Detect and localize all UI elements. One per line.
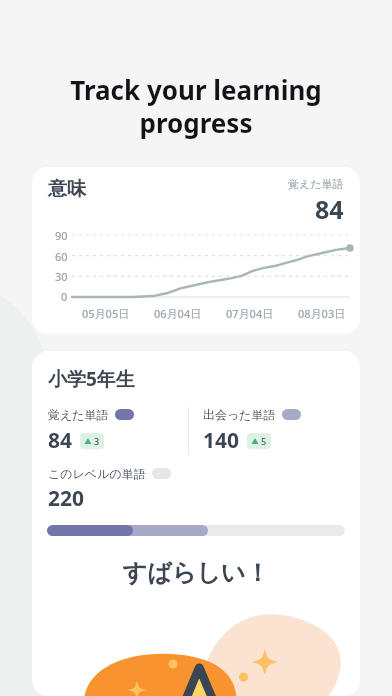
staticText: このレベルの単語 [48, 466, 146, 481]
staticText: すばらしい！ [32, 558, 360, 588]
staticText: 5 [261, 435, 267, 447]
staticText: 30 [55, 269, 68, 284]
button[interactable]: 小学5年生 [32, 351, 360, 696]
button[interactable]: 意味 [32, 167, 360, 334]
staticText: 覚えた単語 [288, 177, 344, 191]
staticText: 05月05日 [82, 306, 130, 321]
staticText: 意味 [48, 177, 86, 201]
staticText: 06月04日 [154, 306, 202, 321]
staticText: 0 [61, 289, 68, 304]
staticText: 覚えた単語 [48, 407, 109, 422]
staticText: 60 [55, 249, 68, 264]
staticText: 3 [94, 435, 100, 447]
staticText: 出会った単語 [203, 407, 276, 422]
staticText: 90 [55, 228, 68, 243]
staticText: 84 [48, 426, 73, 455]
staticText: 84 [315, 192, 344, 226]
staticText: 220 [48, 484, 85, 513]
staticText: 小学5年生 [48, 366, 135, 392]
staticText: 07月04日 [226, 306, 274, 321]
staticText: 140 [203, 426, 240, 455]
staticText: 08月03日 [298, 306, 346, 321]
staticText: Track your learning progress [20, 72, 372, 141]
